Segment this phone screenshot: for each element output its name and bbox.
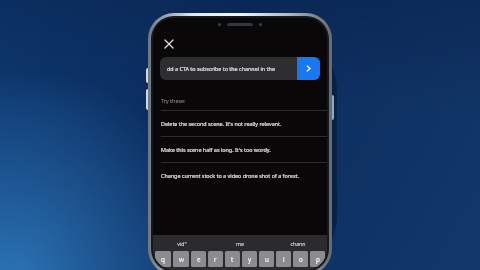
button[interactable]: o — [293, 251, 308, 267]
button[interactable]: w — [173, 251, 189, 267]
staticText: r — [214, 255, 217, 263]
button[interactable]: dd a CTA to subscribe to the channel in … — [160, 57, 320, 80]
staticText: chann — [290, 240, 306, 247]
button[interactable]: Change current stock to a video drone sh… — [153, 162, 327, 188]
staticText: Change current stock to a video drone sh… — [161, 172, 299, 179]
button[interactable]: q — [155, 251, 171, 267]
button[interactable]: me — [211, 235, 269, 251]
button[interactable]: y — [242, 251, 257, 267]
staticText: Make this scene half as long. It's too w… — [161, 146, 271, 153]
staticText: vid" — [177, 240, 187, 247]
staticText: i — [283, 255, 285, 263]
staticText: dd a CTA to subscribe to the channel in … — [167, 65, 293, 72]
staticText: me — [236, 240, 244, 247]
button[interactable]: e — [191, 251, 206, 267]
button[interactable]: Delete the second scene. It's not really… — [153, 110, 327, 136]
button[interactable]: chann — [269, 235, 327, 251]
staticText: y — [248, 255, 252, 263]
button[interactable]: vid" — [153, 235, 211, 251]
staticText: e — [197, 255, 201, 263]
button[interactable]: Make this scene half as long. It's too w… — [153, 136, 327, 162]
staticText: t — [231, 255, 234, 263]
button[interactable]: i — [276, 251, 291, 267]
staticText: w — [179, 255, 184, 263]
button[interactable]: Close — [160, 35, 178, 53]
staticText: Delete the second scene. It's not really… — [161, 120, 282, 127]
button[interactable]: Send — [297, 57, 320, 80]
staticText: Try these: — [161, 97, 186, 104]
staticText: o — [299, 255, 303, 263]
button[interactable]: p — [310, 251, 325, 267]
staticText: u — [265, 255, 269, 263]
button[interactable]: u — [259, 251, 274, 267]
button[interactable]: r — [208, 251, 223, 267]
staticText: p — [316, 255, 320, 263]
button[interactable]: t — [225, 251, 240, 267]
staticText: q — [161, 255, 165, 263]
